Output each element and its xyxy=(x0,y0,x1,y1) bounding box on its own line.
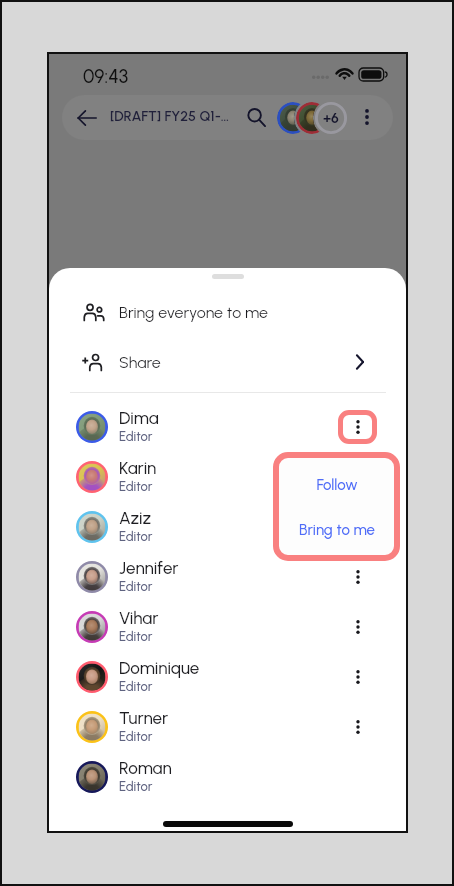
staticText: Bring everyone to me xyxy=(119,303,268,322)
button[interactable]: Jennifer xyxy=(49,552,406,602)
staticText: Bring to me xyxy=(299,521,375,539)
button[interactable]: Roman xyxy=(49,752,406,802)
button[interactable]: Dominique xyxy=(49,652,406,702)
staticText: Dominique xyxy=(119,658,200,678)
button[interactable]: Dima xyxy=(49,402,406,452)
button[interactable]: More options xyxy=(356,106,378,128)
staticText: [DRAFT] FY25 Q1-… xyxy=(110,108,230,125)
staticText: Turner xyxy=(119,708,169,728)
staticText: Follow xyxy=(316,476,358,494)
staticText: Editor xyxy=(119,679,153,695)
button[interactable]: Collaborators, 6 more xyxy=(277,102,347,134)
staticText: Editor xyxy=(119,579,153,595)
staticText: +6 xyxy=(323,110,339,127)
staticText: Editor xyxy=(119,529,153,545)
button[interactable]: Turner xyxy=(49,702,406,752)
staticText: 09:43 xyxy=(83,65,129,88)
button[interactable]: Share xyxy=(49,337,406,387)
staticText: Editor xyxy=(119,479,153,495)
staticText: Vihar xyxy=(119,608,159,628)
staticText: Editor xyxy=(119,629,153,645)
button[interactable]: More options for Jennifer xyxy=(347,566,369,588)
button[interactable]: Follow xyxy=(279,462,394,507)
button[interactable]: Bring everyone to me xyxy=(49,287,406,337)
button[interactable]: More options for Dominique xyxy=(347,666,369,688)
staticText: Editor xyxy=(119,729,153,745)
button[interactable]: Vihar xyxy=(49,602,406,652)
button[interactable]: Bring to me xyxy=(279,507,394,552)
staticText: Editor xyxy=(119,429,153,445)
button[interactable]: Search xyxy=(246,107,267,128)
staticText: Aziz xyxy=(119,508,152,528)
staticText: Jennifer xyxy=(119,558,179,578)
button[interactable]: Back xyxy=(76,106,98,129)
staticText: Share xyxy=(119,353,161,372)
button[interactable]: More options for Vihar xyxy=(347,616,369,638)
staticText: Roman xyxy=(119,758,172,778)
button[interactable]: More options for Turner xyxy=(347,716,369,738)
button[interactable]: More options for Dima xyxy=(347,416,369,438)
button[interactable]: Karin xyxy=(49,452,406,502)
button[interactable]: Aziz xyxy=(49,502,406,552)
staticText: Karin xyxy=(119,458,157,478)
staticText: Editor xyxy=(119,779,153,795)
staticText: Dima xyxy=(119,408,159,428)
